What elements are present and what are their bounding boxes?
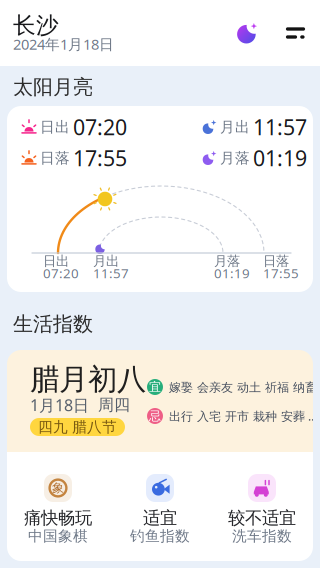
staticText: 07:20	[73, 113, 127, 141]
button[interactable]: 较不适宜	[211, 474, 313, 543]
staticText: 1月18日	[30, 394, 89, 416]
staticText: 周四	[98, 395, 130, 415]
button[interactable]: 夜间模式	[234, 19, 262, 47]
staticText: 生活指数	[13, 312, 93, 336]
staticText: 中国象棋	[28, 527, 88, 545]
staticText: 01:19	[253, 144, 307, 172]
staticText: 长沙	[13, 12, 59, 39]
staticText: 日落	[263, 253, 289, 269]
staticText: 月落	[214, 253, 240, 269]
staticText: 宜	[149, 380, 161, 394]
button[interactable]: 菜单	[281, 22, 310, 44]
staticText: 01:19	[214, 264, 250, 282]
staticText: 11:57	[253, 113, 307, 141]
staticText: 17:55	[263, 264, 299, 282]
button[interactable]: 象	[7, 474, 109, 543]
staticText: 2024年1月18日	[13, 34, 114, 54]
staticText: 日落	[40, 149, 70, 167]
staticText: 11:57	[93, 264, 129, 282]
staticText: 07:20	[43, 264, 79, 282]
staticText: 月出	[220, 118, 250, 136]
staticText: 日出	[40, 118, 70, 136]
staticText: 腊月初八	[30, 361, 146, 397]
staticText: 嫁娶 会亲友 动土 祈福 纳畜…	[169, 379, 320, 395]
staticText: 月出	[93, 253, 119, 269]
staticText: 出行 入宅 开市 栽种 安葬 …	[169, 408, 317, 424]
staticText: 钓鱼指数	[130, 527, 190, 545]
staticText: 较不适宜	[228, 507, 296, 529]
staticText: 适宜	[143, 507, 177, 529]
staticText: 四九 腊八节	[38, 418, 117, 436]
staticText: 日出	[43, 253, 69, 269]
button[interactable]: 适宜	[109, 474, 211, 543]
staticText: 痛快畅玩	[24, 507, 92, 529]
staticText: 月落	[220, 149, 250, 167]
staticText: 忌	[149, 409, 161, 423]
staticText: 象	[52, 481, 64, 495]
staticText: 洗车指数	[232, 527, 292, 545]
staticText: 17:55	[73, 144, 127, 172]
staticText: 太阳月亮	[13, 75, 93, 99]
